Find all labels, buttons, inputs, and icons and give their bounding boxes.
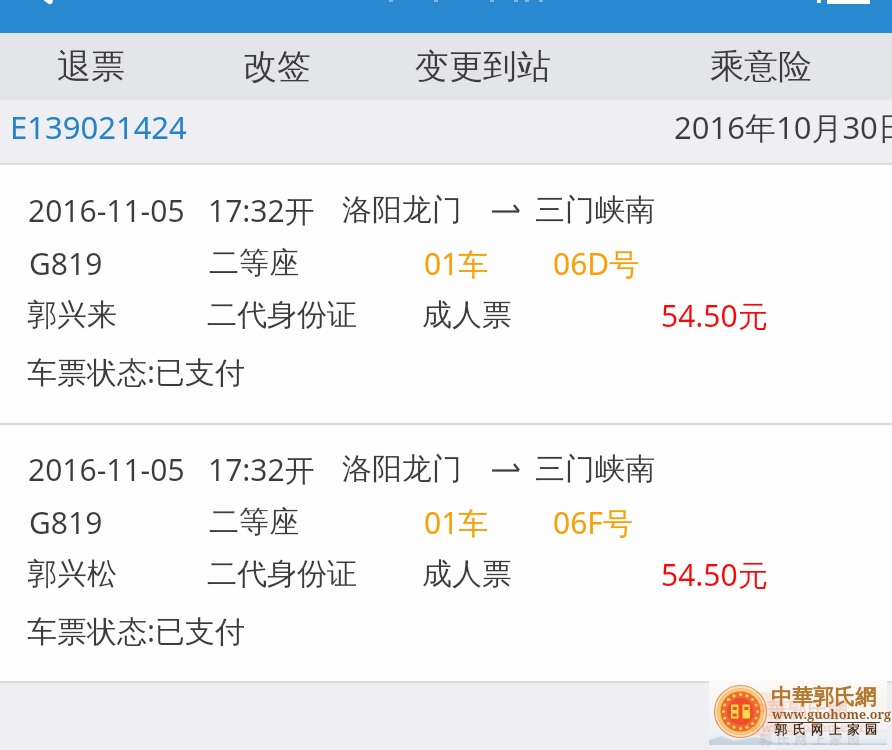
staticText: 郭氏网上家园 [772, 722, 880, 738]
staticText: 二等座 [209, 503, 299, 541]
staticText: 车票状态:已支付 [27, 610, 246, 651]
staticText: 2016-11-05 [28, 190, 185, 231]
button[interactable]: 改签 [203, 33, 351, 100]
staticText: 成人票 [422, 296, 512, 334]
button[interactable]: Back [30, 0, 70, 33]
staticText: 06D号 [553, 243, 640, 284]
button[interactable]: 2016-11-05 [0, 165, 892, 423]
staticText: 06F号 [553, 502, 633, 543]
staticText: 二代身份证 [207, 555, 357, 593]
staticText: 2016-11-05 [28, 449, 185, 490]
button[interactable]: 乘意险 [670, 33, 852, 100]
staticText: 中華郭氏網 [747, 698, 847, 723]
staticText: 二等座 [209, 244, 299, 282]
staticText: 洛阳龙门 [342, 450, 462, 488]
staticText: 三门峡南 [535, 450, 655, 488]
staticText: 改签 [243, 45, 311, 88]
staticText: G819 [29, 243, 103, 284]
staticText: 2016年10月30日 [674, 106, 892, 148]
button[interactable]: 2016-11-05 [0, 425, 892, 681]
staticText: 二代身份证 [207, 296, 357, 334]
staticText: 01车 [424, 502, 489, 543]
button[interactable]: 退票 [17, 33, 165, 100]
staticText: 54.50元 [661, 295, 768, 336]
button[interactable]: 变更到站 [375, 33, 591, 100]
staticText: 乘意险 [710, 45, 812, 88]
button[interactable] [0, 100, 892, 163]
staticText: www.guohome.org [772, 706, 892, 723]
staticText: 退票 [57, 45, 125, 88]
staticText: www.guohome.org [750, 718, 874, 736]
staticText: 变更到站 [415, 45, 551, 88]
staticText: E139021424 [10, 106, 187, 148]
staticText: 郭兴来 [27, 296, 117, 334]
staticText: 17:32开 [208, 190, 315, 231]
staticText: 01车 [424, 243, 489, 284]
staticText: 郭兴松 [27, 555, 117, 593]
staticText: 成人票 [422, 555, 512, 593]
staticText: 三门峡南 [535, 191, 655, 229]
staticText: 17:32开 [208, 449, 315, 490]
staticText: 54.50元 [661, 554, 768, 595]
staticText: 车票状态:已支付 [27, 351, 246, 392]
staticText: G819 [29, 502, 103, 543]
staticText: 郭氏网上家园 [757, 732, 862, 748]
staticText: 洛阳龙门 [342, 191, 462, 229]
staticText: 中華郭氏網 [771, 684, 876, 710]
